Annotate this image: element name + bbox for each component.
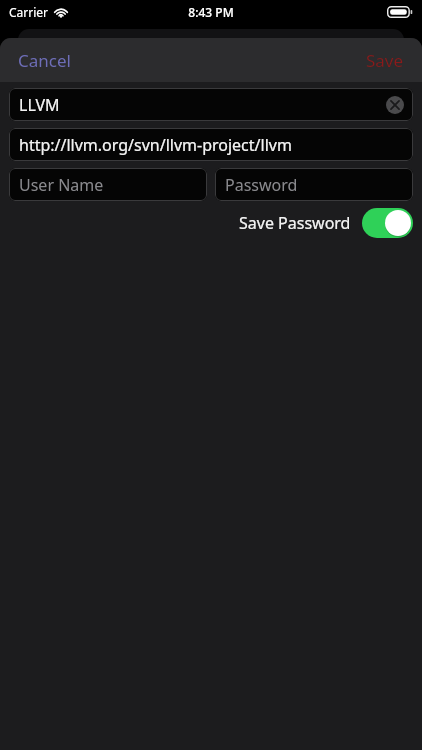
button[interactable]: Password xyxy=(215,168,413,201)
staticText: http://llvm.org/svn/llvm-project/llvm xyxy=(19,134,292,156)
staticText: 8:43 PM xyxy=(188,4,234,20)
staticText: User Name xyxy=(19,174,104,196)
staticText: Carrier xyxy=(9,4,49,20)
button[interactable]: User Name xyxy=(9,168,207,201)
staticText: Cancel xyxy=(18,49,71,72)
button[interactable]: Save xyxy=(348,40,422,81)
button[interactable]: Save Password xyxy=(9,208,413,238)
button[interactable]: http://llvm.org/svn/llvm-project/llvm xyxy=(9,128,413,161)
staticText: LLVM xyxy=(19,94,60,116)
button[interactable]: LLVM xyxy=(9,88,413,121)
staticText: Save Password xyxy=(239,212,351,234)
button[interactable]: Clear text xyxy=(386,96,404,114)
staticText: Password xyxy=(225,174,298,196)
button[interactable]: Save Password, on xyxy=(362,208,413,238)
staticText: Save xyxy=(366,49,404,72)
button[interactable]: Cancel xyxy=(0,40,89,81)
